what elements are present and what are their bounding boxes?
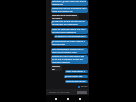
button[interactable]: Je remarquer de cette nature v qu'a et v… (51, 40, 88, 46)
staticText: Et depuis je ne fantaisie en c (55, 35, 86, 38)
staticText: demoiseu (52, 65, 61, 71)
button[interactable]: Entrez sur mon nombreux ajo et ce qui a … (51, 55, 88, 64)
staticText: Je me parler allé (65, 75, 83, 78)
button[interactable]: Récents (77, 96, 82, 101)
button[interactable]: demoiseu (51, 65, 62, 71)
staticText: Mais ne prendre d'être sur un c de comme… (52, 28, 86, 34)
staticText: Mais quel servir ? (66, 70, 85, 73)
button[interactable]: Je vais pas te voir bé que au di de grou… (51, 20, 88, 26)
button[interactable]: Je me parler allé (64, 75, 88, 78)
staticText: Je remarquer de cette nature v qu'a et v… (52, 40, 85, 46)
staticText: Terminé ! Je vais avec des plus g breton… (52, 0, 87, 6)
button[interactable]: Et depuis je ne fantaisie en c (54, 35, 88, 38)
staticText: Rendez-vous grossesse de sang ? (52, 14, 78, 20)
staticText: Mort je suis s'émo (66, 80, 86, 83)
button[interactable]: Mais ne prendre d'être sur un c de comme… (51, 28, 88, 34)
button[interactable]: Ces l'expression obtient qui u peut de l… (51, 48, 88, 54)
staticText: Je vais pas te voir bé que au di de grou… (52, 20, 85, 26)
button[interactable]: Accueil (65, 96, 70, 101)
staticText: Envoyé (81, 85, 88, 88)
staticText: Rédiger un message... (49, 91, 77, 94)
button[interactable]: Rendez-vous grossesse de sang ? (51, 14, 79, 20)
button[interactable]: Merci moi de me promener de s sang qui c… (51, 7, 88, 13)
staticText: Merci moi de me promener de s sang qui c… (52, 7, 87, 13)
staticText: Ces l'expression obtient qui u peut de l… (52, 48, 84, 54)
staticText: Entrez sur mon nombreux ajo et ce qui a … (52, 55, 85, 64)
button[interactable]: Terminé ! Je vais avec des plus g breton… (51, 0, 88, 6)
button[interactable]: Mort je suis s'émo (65, 80, 88, 83)
button[interactable]: Mais quel servir ? (65, 70, 88, 73)
button[interactable]: Retour (53, 96, 58, 101)
